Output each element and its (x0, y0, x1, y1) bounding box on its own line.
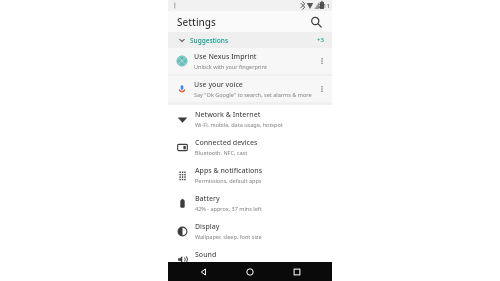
staticText: Use your voice (194, 80, 243, 90)
staticText: Apps & notifications (195, 166, 263, 176)
staticText: 42% - approx. 37 mins left (195, 205, 262, 212)
staticText: Display (195, 222, 220, 232)
staticText: Use Nexus Imprint (194, 52, 257, 62)
button[interactable]: Apps & notifications (168, 161, 332, 189)
staticText: +3 (317, 36, 324, 44)
button[interactable]: Home (239, 262, 261, 281)
staticText: Battery (195, 194, 220, 204)
staticText: Wallpaper, sleep, font size (195, 233, 262, 240)
staticText: Settings (177, 15, 216, 29)
button[interactable]: Recent apps (286, 262, 308, 281)
button[interactable]: Connected devices (168, 133, 332, 161)
button[interactable]: More options (316, 48, 328, 74)
staticText: Connected devices (195, 138, 258, 148)
button[interactable]: Back (193, 262, 215, 281)
staticText: Bluetooth, NFC, cast (195, 149, 248, 156)
button[interactable]: Sound (168, 245, 332, 273)
staticText: Say "Ok Google" to search, set alarms & … (194, 91, 312, 98)
staticText: Network & Internet (195, 110, 261, 120)
button[interactable]: Battery (168, 189, 332, 217)
button[interactable]: Suggestions (168, 32, 332, 48)
button[interactable]: Search (307, 13, 325, 31)
staticText: Suggestions (190, 36, 229, 45)
button[interactable]: Display (168, 217, 332, 245)
staticText: 2:11 (318, 2, 330, 10)
staticText: Wi-Fi, mobile, data usage, hotspot (195, 121, 283, 128)
staticText: Unlock with your fingerprint (194, 63, 267, 70)
button[interactable]: Network & Internet (168, 105, 332, 133)
staticText: Sound (195, 250, 217, 260)
button[interactable]: Use Nexus Imprint (168, 48, 332, 74)
button[interactable]: Use your voice (168, 76, 332, 102)
button[interactable]: More options (316, 76, 328, 102)
staticText: Permissions, default apps (195, 177, 262, 184)
staticText: Volume, vibration, Do not disturb (195, 261, 281, 268)
